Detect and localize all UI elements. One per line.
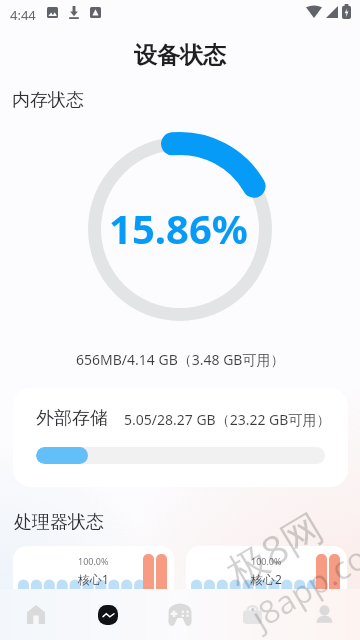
staticText: 设备状态	[134, 41, 226, 70]
staticText: 核心2	[251, 571, 282, 587]
staticText: 5.05/28.27 GB（23.22 GB可用）	[124, 410, 331, 429]
button[interactable]: Games	[144, 589, 216, 640]
staticText: 656MB/4.14 GB（3.48 GB可用）	[76, 350, 285, 369]
staticText: 外部存储	[36, 407, 108, 430]
staticText: 核心1	[78, 571, 109, 587]
staticText: 处理器状态	[14, 511, 104, 534]
button[interactable]: Profile	[288, 589, 360, 640]
staticText: 极8网	[216, 499, 333, 599]
button[interactable]: Home	[0, 589, 72, 640]
button[interactable]: 外部存储	[13, 388, 348, 487]
staticText: 100.0%	[78, 555, 109, 567]
staticText: 15.86%	[109, 201, 248, 255]
staticText: 100.0%	[251, 555, 282, 567]
button[interactable]: Monitor	[72, 589, 144, 640]
button[interactable]: 100.0%	[13, 546, 174, 612]
staticText: 内存状态	[12, 89, 84, 112]
staticText: j8app.com	[243, 520, 360, 639]
button[interactable]: 100.0%	[186, 546, 347, 612]
button[interactable]: Store	[216, 589, 288, 640]
staticText: 4:44	[10, 6, 36, 24]
